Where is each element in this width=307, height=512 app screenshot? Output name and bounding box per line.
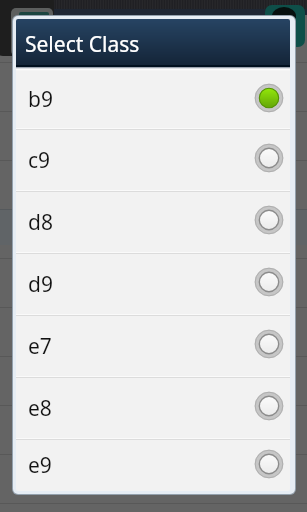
other: Selected [253,82,285,114]
staticText: d9 [28,270,253,299]
other: Not selected [253,448,285,480]
other: Not selected [253,266,285,298]
staticText: e9 [28,451,253,480]
staticText: d8 [28,208,253,237]
button[interactable]: e8 [16,378,290,438]
button[interactable]: e7 [16,316,290,376]
other: Not selected [253,204,285,236]
staticText: e8 [28,394,253,423]
button[interactable]: d9 [16,254,290,314]
button[interactable]: b9 [16,71,290,128]
staticText: c9 [28,146,253,175]
other: Not selected [253,142,285,174]
staticText: Select Class [25,30,140,59]
other: Not selected [253,328,285,360]
button[interactable]: c9 [16,130,290,190]
button[interactable]: d8 [16,192,290,252]
other: Not selected [253,390,285,422]
button[interactable]: e9 [16,440,290,491]
staticText: e7 [28,332,253,361]
staticText: b9 [28,85,253,114]
